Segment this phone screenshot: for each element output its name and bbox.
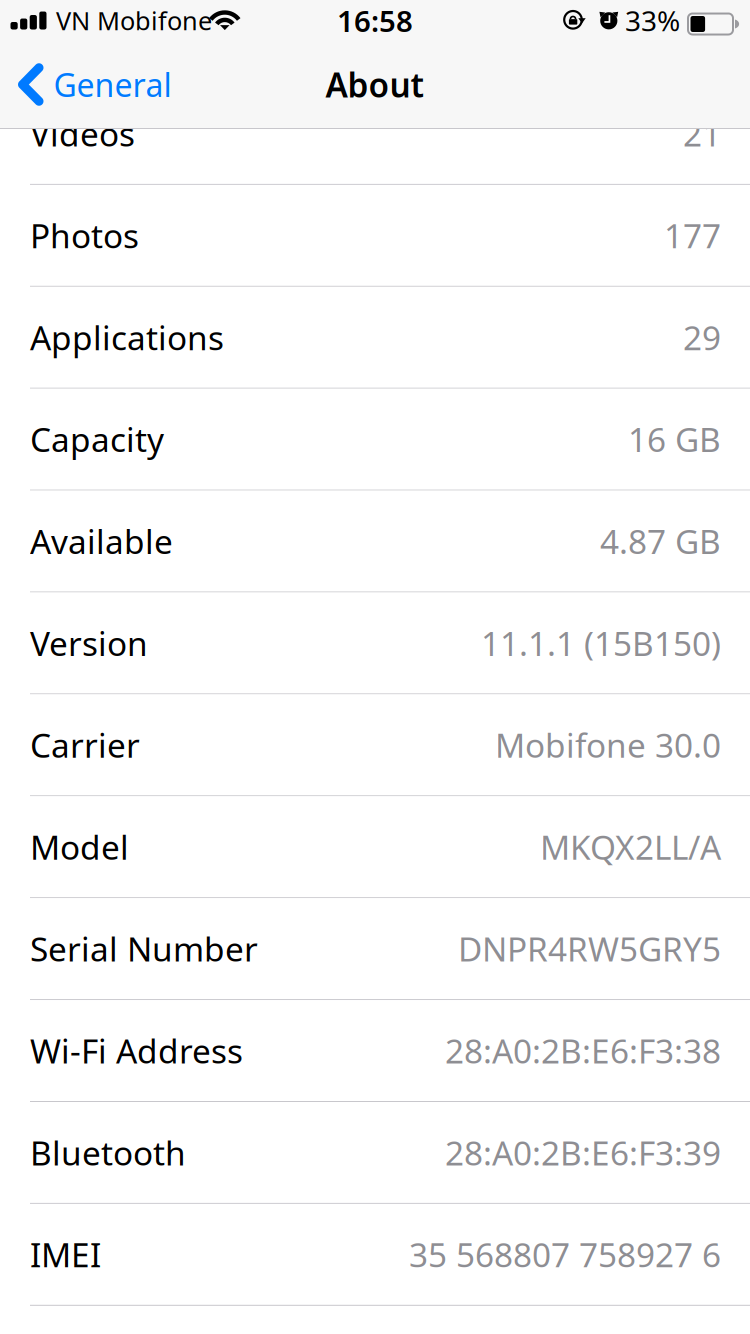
staticText: 21 <box>683 111 721 156</box>
staticText: Applications <box>30 315 224 359</box>
button[interactable]: Available <box>0 491 750 592</box>
staticText: 28:A0:2B:E6:F3:39 <box>445 1130 721 1175</box>
staticText: 16 GB <box>628 417 721 461</box>
staticText: Capacity <box>30 417 164 461</box>
button[interactable]: Applications <box>0 287 750 389</box>
staticText: Version <box>30 621 148 665</box>
button[interactable]: General <box>0 41 183 128</box>
staticText: Mobifone 30.0 <box>495 723 721 767</box>
staticText: VN Mobifone <box>56 4 212 37</box>
button[interactable]: Model <box>0 796 750 898</box>
button[interactable]: Version <box>0 592 750 694</box>
staticText: 4.87 GB <box>600 519 721 563</box>
staticText: 29 <box>683 315 721 359</box>
button[interactable]: Capacity <box>0 389 750 491</box>
button[interactable]: Wi-Fi Address <box>0 1000 750 1102</box>
staticText: Carrier <box>30 723 140 767</box>
button[interactable]: Carrier <box>0 694 750 796</box>
button[interactable]: Videos <box>0 128 750 185</box>
button[interactable]: Bluetooth <box>0 1102 750 1204</box>
staticText: Serial Number <box>30 926 258 971</box>
staticText: 177 <box>664 213 721 257</box>
staticText: 35 568807 758927 6 <box>409 1232 721 1276</box>
button[interactable]: Photos <box>0 185 750 287</box>
staticText: 11.1.1 (15B150) <box>481 621 721 665</box>
staticText: MKQX2LL/A <box>540 825 721 869</box>
staticText: Model <box>30 825 129 869</box>
staticText: IMEI <box>30 1232 101 1276</box>
staticText: Bluetooth <box>30 1130 186 1175</box>
staticText: 28:A0:2B:E6:F3:38 <box>445 1028 721 1073</box>
staticText: Available <box>30 519 173 563</box>
staticText: Videos <box>30 111 135 156</box>
button[interactable]: IMEI <box>0 1204 750 1306</box>
staticText: General <box>53 63 171 106</box>
button[interactable]: Serial Number <box>0 898 750 1000</box>
staticText: About <box>325 62 424 107</box>
staticText: Photos <box>30 213 139 257</box>
staticText: 33% <box>625 2 680 39</box>
staticText: 16:58 <box>337 1 413 40</box>
staticText: DNPR4RW5GRY5 <box>458 926 721 971</box>
staticText: Wi-Fi Address <box>30 1028 243 1073</box>
